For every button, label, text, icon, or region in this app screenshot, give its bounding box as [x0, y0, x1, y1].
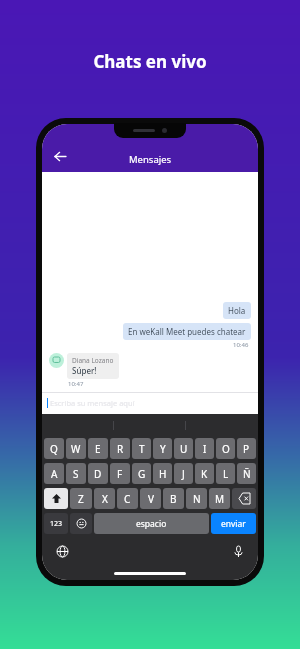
button[interactable]: C	[117, 488, 138, 509]
button[interactable]: Z	[70, 488, 92, 509]
staticText: Q	[50, 442, 58, 456]
button[interactable]: F	[110, 463, 130, 484]
button[interactable]: R	[110, 438, 130, 459]
staticText: R	[117, 442, 124, 456]
staticText: K	[201, 467, 208, 481]
staticText: X	[102, 492, 108, 506]
button[interactable]: Shift	[44, 488, 68, 509]
button[interactable]: A	[44, 463, 64, 484]
button[interactable]: E	[88, 438, 108, 459]
staticText: Ñ	[243, 467, 251, 481]
button[interactable]: L	[216, 463, 235, 484]
button[interactable]: W	[66, 438, 86, 459]
staticText: N	[193, 492, 201, 506]
staticText: C	[124, 492, 131, 506]
button[interactable]: Ñ	[237, 463, 256, 484]
button[interactable]: P	[237, 438, 256, 459]
button[interactable]: T	[132, 438, 151, 459]
button[interactable]: X	[94, 488, 115, 509]
staticText: P	[243, 442, 250, 456]
button[interactable]: J	[174, 463, 193, 484]
button[interactable]: Change keyboard language	[54, 543, 70, 559]
staticText: Z	[78, 492, 84, 506]
staticText: Súper!	[72, 365, 97, 376]
staticText: A	[51, 467, 58, 481]
staticText: espacio	[136, 518, 167, 530]
staticText: T	[139, 442, 145, 456]
button[interactable]: Emoji	[70, 513, 92, 534]
button[interactable]: U	[174, 438, 193, 459]
staticText: D	[94, 467, 102, 481]
button[interactable]: Voice input	[230, 543, 246, 559]
staticText: I	[203, 442, 207, 456]
staticText: W	[71, 442, 81, 456]
button[interactable]: V	[140, 488, 161, 509]
staticText: E	[95, 442, 101, 456]
button[interactable]: M	[209, 488, 230, 509]
staticText: L	[223, 467, 229, 481]
button[interactable]: I	[195, 438, 214, 459]
button[interactable]: Back	[48, 144, 72, 168]
button[interactable]: espacio	[94, 513, 209, 534]
button[interactable]: Escriba su mensaje aquí	[42, 392, 258, 414]
staticText: B	[170, 492, 177, 506]
staticText: 10:47	[68, 380, 84, 388]
button[interactable]: G	[132, 463, 151, 484]
staticText: U	[180, 442, 188, 456]
staticText: O	[222, 442, 230, 456]
staticText: Diana Lozano	[72, 356, 114, 365]
staticText: S	[73, 467, 79, 481]
button[interactable]: O	[216, 438, 235, 459]
button[interactable]: S	[66, 463, 86, 484]
button[interactable]: Y	[153, 438, 172, 459]
button[interactable]: En weKall Meet puedes chatear	[123, 323, 251, 340]
button[interactable]: K	[195, 463, 214, 484]
button[interactable]: B	[163, 488, 184, 509]
staticText: Y	[160, 442, 166, 456]
staticText: G	[138, 467, 146, 481]
button[interactable]: H	[153, 463, 172, 484]
staticText: M	[215, 492, 225, 506]
staticText: Mensajes	[129, 153, 172, 166]
staticText: 123	[50, 519, 63, 529]
staticText: V	[148, 492, 154, 506]
staticText: En weKall Meet puedes chatear	[128, 326, 246, 337]
staticText: Escriba su mensaje aquí	[50, 398, 135, 408]
button[interactable]: enviar	[211, 513, 256, 534]
staticText: enviar	[221, 518, 246, 530]
staticText: 10:46	[233, 341, 249, 349]
button[interactable]: N	[186, 488, 207, 509]
staticText: J	[182, 467, 185, 481]
staticText: Hola	[228, 305, 246, 316]
button[interactable]: Backspace	[232, 488, 256, 509]
button[interactable]: Hola	[223, 302, 251, 319]
button[interactable]: D	[88, 463, 108, 484]
button[interactable]: 123	[44, 513, 68, 534]
staticText: H	[159, 467, 167, 481]
staticText: F	[117, 467, 123, 481]
staticText: Chats en vivo	[0, 50, 300, 73]
button[interactable]: Q	[44, 438, 64, 459]
